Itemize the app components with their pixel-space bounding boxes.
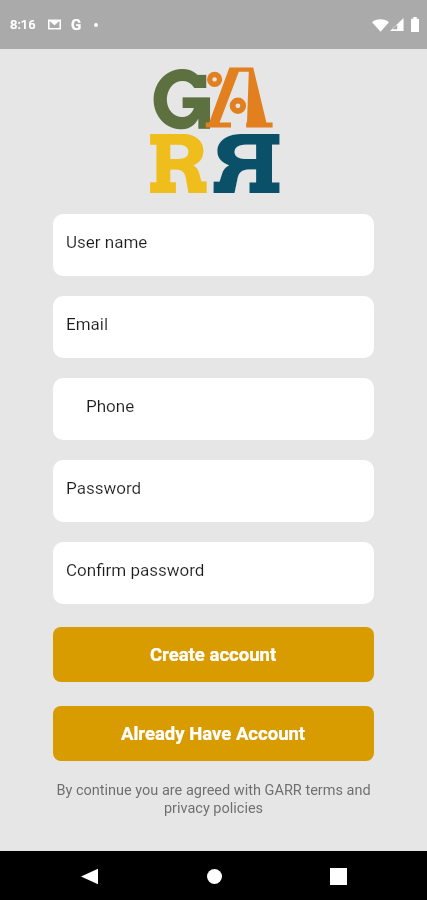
button[interactable]: Confirm password [53,542,374,604]
button[interactable]: Phone [53,378,374,440]
button[interactable]: Back [65,852,113,900]
button[interactable]: User name [53,214,374,276]
staticText: R [145,116,208,213]
staticText: Password [66,478,142,498]
staticText: R [211,116,285,213]
staticText: By continue you are agreed with GARR ter… [42,782,385,817]
staticText: Phone [86,396,135,416]
staticText: Email [66,314,109,334]
staticText: Already Have Account [121,723,306,745]
button[interactable]: Home [190,852,238,900]
button[interactable]: Recent apps [314,852,362,900]
staticText: Confirm password [66,560,205,580]
staticText: 8:16 [10,17,36,32]
staticText: G [71,16,82,34]
button[interactable]: Email [53,296,374,358]
button[interactable]: Already Have Account [53,706,374,761]
button[interactable]: Create account [53,627,374,682]
staticText: Create account [150,644,277,666]
staticText: User name [66,232,148,252]
staticText: G [151,52,215,149]
button[interactable]: Password [53,460,374,522]
